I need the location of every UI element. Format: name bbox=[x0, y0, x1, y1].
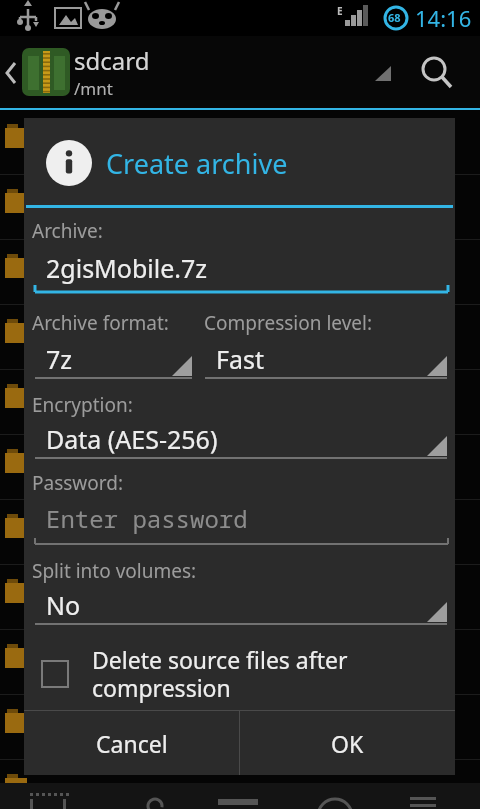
staticText: Cancel bbox=[96, 728, 168, 759]
staticText: E bbox=[337, 4, 343, 18]
staticText: Create archive bbox=[106, 145, 288, 182]
staticText: 7z bbox=[46, 342, 73, 376]
staticText: Archive format: bbox=[32, 310, 169, 336]
staticText: 14:16 bbox=[415, 3, 472, 33]
button[interactable]: Split into volumes bbox=[35, 586, 447, 632]
staticText: Archive: bbox=[32, 218, 103, 244]
staticText: OK bbox=[331, 728, 364, 759]
button[interactable]: Enter password bbox=[24, 498, 455, 550]
button[interactable]: Compression level bbox=[205, 340, 447, 386]
button[interactable]: Encryption bbox=[35, 420, 447, 466]
button[interactable]: Delete source files after compression bbox=[24, 638, 455, 710]
staticText: Password: bbox=[32, 470, 124, 496]
staticText: Split into volumes: bbox=[32, 558, 197, 584]
button[interactable]: Archive format bbox=[35, 340, 192, 386]
staticText: Fast bbox=[216, 342, 265, 376]
staticText: Compression level: bbox=[204, 310, 373, 336]
button[interactable]: 2gisMobile.7z bbox=[24, 250, 455, 302]
staticText: sdcard bbox=[74, 44, 150, 77]
button[interactable]: Cancel bbox=[24, 711, 239, 775]
staticText: /mnt bbox=[74, 77, 113, 100]
staticText: 2gisMobile.7z bbox=[46, 251, 208, 285]
staticText: Data (AES-256) bbox=[46, 422, 218, 456]
staticText: Delete source files after compression bbox=[92, 644, 348, 704]
staticText: 68 bbox=[388, 10, 401, 25]
staticText: Encryption: bbox=[32, 392, 133, 418]
staticText: Enter password bbox=[46, 502, 248, 535]
button[interactable]: OK bbox=[240, 711, 455, 775]
staticText: No bbox=[46, 588, 81, 622]
